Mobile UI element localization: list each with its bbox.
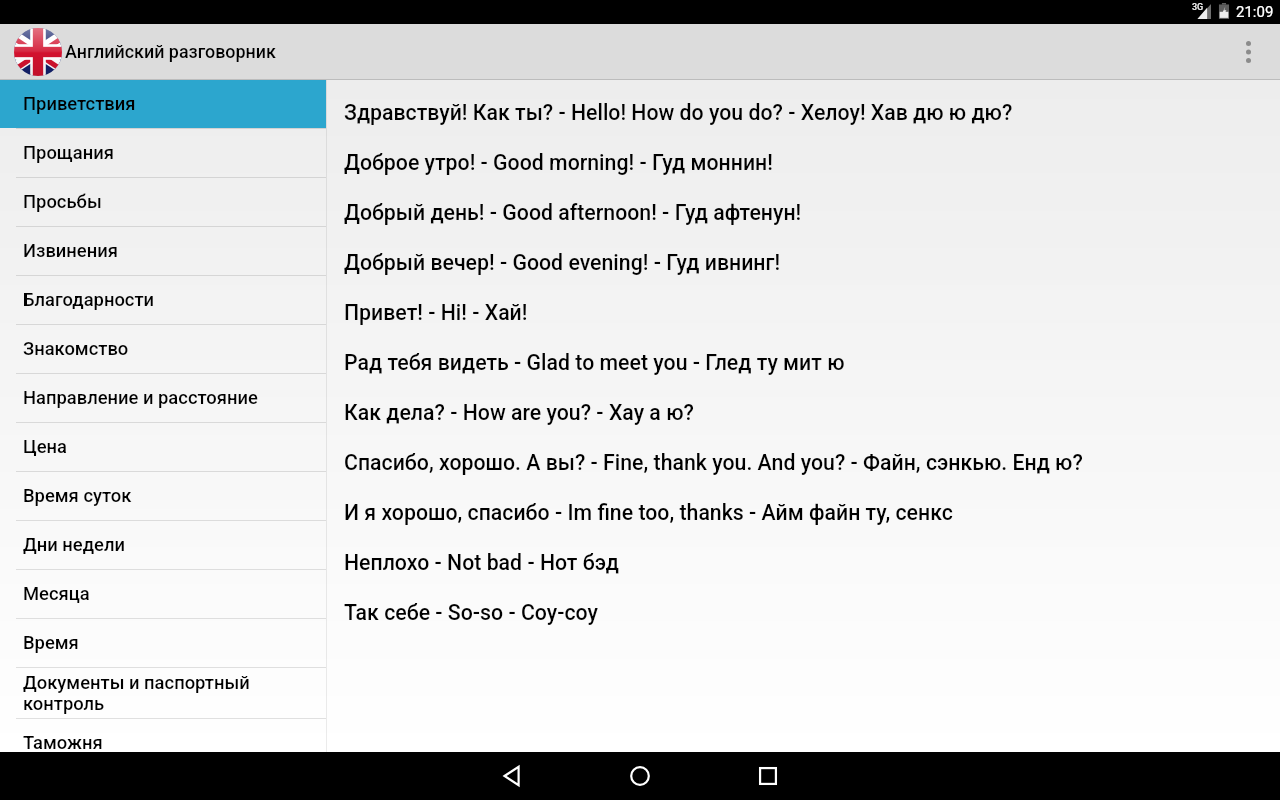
button[interactable]: Таможня bbox=[0, 719, 326, 752]
staticText: Дни недели bbox=[23, 534, 125, 556]
staticText: Документы и паспортный контроль bbox=[23, 672, 304, 714]
button[interactable]: Здравствуй! Как ты? - Hello! How do you … bbox=[344, 87, 1280, 137]
button[interactable]: Рад тебя видеть - Glad to meet you - Гле… bbox=[344, 337, 1280, 387]
staticText: Цена bbox=[23, 436, 67, 458]
button[interactable]: Неплохо - Not bad - Нот бэд bbox=[344, 537, 1280, 587]
staticText: Так себе - So-so - Соу-соу bbox=[344, 600, 598, 625]
staticText: Спасибо, хорошо. А вы? - Fine, thank you… bbox=[344, 450, 1083, 475]
button[interactable]: Приветствия bbox=[0, 80, 326, 128]
staticText: Добрый вечер! - Good evening! - Гуд ивни… bbox=[344, 250, 781, 275]
button[interactable]: Home bbox=[576, 752, 704, 800]
button[interactable]: Recent apps bbox=[704, 752, 832, 800]
button[interactable]: Привет! - Hi! - Хай! bbox=[344, 287, 1280, 337]
button[interactable]: Месяца bbox=[0, 570, 326, 618]
button[interactable]: Время суток bbox=[0, 472, 326, 520]
staticText: Просьбы bbox=[23, 191, 102, 213]
staticText: Неплохо - Not bad - Нот бэд bbox=[344, 550, 619, 575]
staticText: Время суток bbox=[23, 485, 132, 507]
staticText: Направление и расстояние bbox=[23, 387, 258, 409]
button[interactable]: Просьбы bbox=[0, 178, 326, 226]
button[interactable]: Документы и паспортный контроль bbox=[0, 668, 326, 718]
staticText: Прощания bbox=[23, 142, 114, 164]
button[interactable]: Доброе утро! - Good morning! - Гуд монни… bbox=[344, 137, 1280, 187]
button[interactable]: Спасибо, хорошо. А вы? - Fine, thank you… bbox=[344, 437, 1280, 487]
staticText: Английский разговорник bbox=[65, 41, 276, 62]
button[interactable]: Цена bbox=[0, 423, 326, 471]
staticText: Как дела? - How are you? - Хау а ю? bbox=[344, 400, 694, 425]
button[interactable]: Направление и расстояние bbox=[0, 374, 326, 422]
button[interactable]: Знакомство bbox=[0, 325, 326, 373]
staticText: 3G bbox=[1192, 2, 1204, 13]
staticText: Привет! - Hi! - Хай! bbox=[344, 300, 528, 325]
staticText: Доброе утро! - Good morning! - Гуд монни… bbox=[344, 150, 773, 175]
button[interactable]: Прощания bbox=[0, 129, 326, 177]
staticText: Таможня bbox=[23, 732, 103, 752]
button[interactable]: Как дела? - How are you? - Хау а ю? bbox=[344, 387, 1280, 437]
staticText: Здравствуй! Как ты? - Hello! How do you … bbox=[344, 100, 1013, 125]
staticText: Извинения bbox=[23, 240, 118, 262]
staticText: Добрый день! - Good afternoon! - Гуд афт… bbox=[344, 200, 802, 225]
staticText: 21:09 bbox=[1236, 3, 1274, 21]
staticText: Рад тебя видеть - Glad to meet you - Гле… bbox=[344, 350, 845, 375]
staticText: Месяца bbox=[23, 583, 90, 605]
staticText: Знакомство bbox=[23, 338, 129, 360]
button[interactable]: Добрый день! - Good afternoon! - Гуд афт… bbox=[344, 187, 1280, 237]
button[interactable]: Извинения bbox=[0, 227, 326, 275]
button[interactable]: Так себе - So-so - Соу-соу bbox=[344, 587, 1280, 637]
button[interactable]: Back bbox=[448, 752, 576, 800]
button[interactable]: More options bbox=[1226, 24, 1270, 79]
staticText: Благодарности bbox=[23, 289, 155, 311]
button[interactable]: Благодарности bbox=[0, 276, 326, 324]
button[interactable]: Добрый вечер! - Good evening! - Гуд ивни… bbox=[344, 237, 1280, 287]
staticText: И я хорошо, спасибо - Im fine too, thank… bbox=[344, 500, 953, 525]
staticText: Приветствия bbox=[23, 93, 136, 115]
staticText: Время bbox=[23, 632, 79, 654]
button[interactable]: И я хорошо, спасибо - Im fine too, thank… bbox=[344, 487, 1280, 537]
button[interactable]: Время bbox=[0, 619, 326, 667]
button[interactable]: Дни недели bbox=[0, 521, 326, 569]
